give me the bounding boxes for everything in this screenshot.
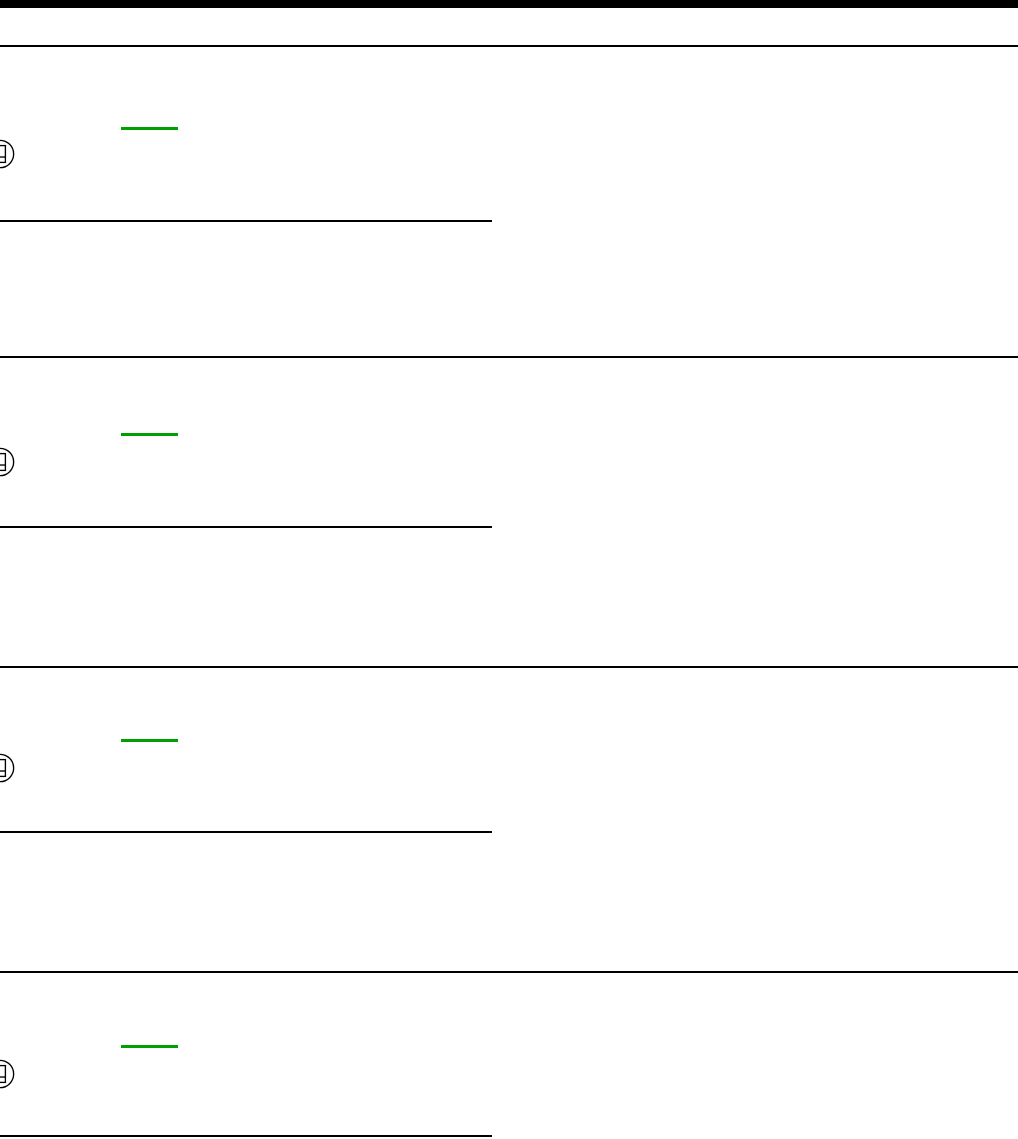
button[interactable]: Device	[0, 1059, 15, 1089]
button[interactable]: Device	[0, 139, 15, 169]
button[interactable]: Device	[0, 447, 15, 477]
button[interactable]: Device	[0, 753, 15, 783]
